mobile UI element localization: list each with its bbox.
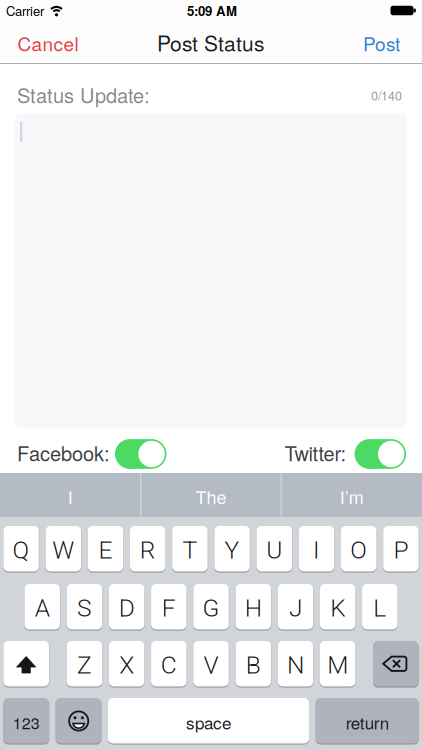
button[interactable]: I bbox=[5, 474, 135, 518]
button[interactable]: G bbox=[193, 584, 229, 629]
button[interactable]: N bbox=[278, 641, 313, 686]
button[interactable]: H bbox=[235, 584, 271, 629]
staticText: P bbox=[393, 536, 408, 565]
button[interactable]: T bbox=[172, 526, 208, 571]
button[interactable]: X bbox=[109, 641, 144, 686]
staticText: 5:09 AM bbox=[187, 1, 237, 20]
button[interactable]: Post bbox=[310, 22, 400, 64]
staticText: W bbox=[52, 536, 74, 565]
staticText: S bbox=[77, 594, 92, 623]
button[interactable]: Shift bbox=[3, 641, 49, 686]
staticText: H bbox=[245, 594, 262, 623]
staticText: I bbox=[313, 536, 320, 565]
button[interactable]: U bbox=[257, 526, 292, 571]
staticText: C bbox=[161, 651, 177, 680]
button[interactable]: A bbox=[24, 584, 60, 629]
staticText: Post bbox=[363, 29, 400, 57]
staticText: O bbox=[350, 536, 367, 565]
button[interactable]: I bbox=[299, 526, 334, 571]
button[interactable]: V bbox=[193, 641, 229, 686]
button[interactable]: Z bbox=[67, 641, 102, 686]
button[interactable]: 123 bbox=[3, 698, 49, 743]
staticText: Twitter: bbox=[284, 438, 346, 467]
staticText: K bbox=[330, 594, 345, 623]
button[interactable]: space bbox=[108, 698, 309, 743]
staticText: 0/140 bbox=[371, 86, 402, 104]
staticText: Z bbox=[77, 651, 92, 680]
staticText: I’m bbox=[340, 484, 364, 509]
staticText: U bbox=[266, 536, 282, 565]
staticText: N bbox=[287, 651, 304, 680]
staticText: X bbox=[119, 651, 134, 680]
staticText: F bbox=[162, 594, 176, 623]
button[interactable]: S bbox=[67, 584, 102, 629]
staticText: T bbox=[182, 536, 197, 565]
staticText: M bbox=[327, 651, 348, 680]
staticText: Y bbox=[225, 536, 240, 565]
button[interactable]: C bbox=[151, 641, 187, 686]
staticText: Cancel bbox=[17, 29, 78, 57]
staticText: return bbox=[346, 710, 389, 734]
staticText: J bbox=[289, 594, 302, 623]
staticText: Status Update: bbox=[17, 80, 150, 109]
button[interactable]: E bbox=[88, 526, 123, 571]
button[interactable]: W bbox=[46, 526, 81, 571]
staticText: space bbox=[186, 710, 231, 734]
button[interactable]: R bbox=[130, 526, 165, 571]
staticText: 123 bbox=[13, 711, 40, 734]
button[interactable]: P bbox=[383, 526, 419, 571]
button[interactable]: D bbox=[109, 584, 144, 629]
staticText: Carrier bbox=[6, 1, 44, 20]
button[interactable]: return bbox=[316, 698, 419, 743]
button[interactable]: J bbox=[278, 584, 313, 629]
staticText: V bbox=[203, 651, 218, 680]
staticText: B bbox=[246, 651, 261, 680]
staticText: L bbox=[373, 594, 386, 623]
staticText: D bbox=[119, 594, 135, 623]
button[interactable]: O bbox=[341, 526, 376, 571]
button[interactable]: Twitter bbox=[355, 439, 406, 469]
staticText: G bbox=[202, 594, 219, 623]
button[interactable]: Q bbox=[3, 526, 39, 571]
button[interactable]: Delete bbox=[373, 641, 419, 686]
button[interactable]: M bbox=[320, 641, 355, 686]
staticText: R bbox=[140, 536, 156, 565]
button[interactable]: The bbox=[146, 474, 276, 518]
button[interactable]: Y bbox=[214, 526, 250, 571]
button[interactable]: F bbox=[151, 584, 187, 629]
staticText: Facebook: bbox=[17, 438, 110, 467]
staticText: Post Status bbox=[157, 27, 265, 58]
button[interactable]: Cancel bbox=[17, 22, 117, 64]
button[interactable]: L bbox=[362, 584, 398, 629]
staticText: A bbox=[35, 594, 50, 623]
button[interactable]: Facebook bbox=[115, 439, 166, 469]
staticText: E bbox=[98, 536, 112, 565]
button[interactable]: K bbox=[320, 584, 355, 629]
button[interactable]: B bbox=[235, 641, 271, 686]
staticText: I bbox=[68, 484, 73, 509]
button[interactable]: Emoji bbox=[56, 698, 101, 743]
staticText: The bbox=[195, 484, 226, 509]
staticText: Q bbox=[13, 536, 30, 565]
button[interactable]: I’m bbox=[287, 474, 417, 518]
